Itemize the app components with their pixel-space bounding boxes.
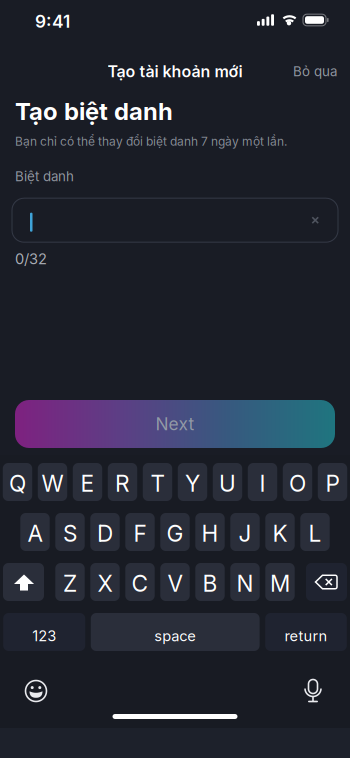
- button[interactable]: X: [90, 563, 120, 601]
- staticText: J: [238, 520, 251, 547]
- button[interactable]: K: [265, 513, 295, 551]
- staticText: 9:41: [35, 11, 70, 32]
- button[interactable]: T: [143, 463, 172, 501]
- staticText: R: [115, 470, 130, 497]
- staticText: I: [259, 470, 265, 497]
- button[interactable]: G: [160, 513, 190, 551]
- button[interactable]: N: [230, 563, 260, 601]
- staticText: B: [202, 570, 217, 597]
- button[interactable]: C: [125, 563, 155, 601]
- button[interactable]: P: [318, 463, 347, 501]
- staticText: W: [41, 470, 63, 497]
- staticText: Next: [155, 414, 194, 434]
- button[interactable]: S: [55, 513, 85, 551]
- staticText: F: [133, 520, 146, 547]
- staticText: Z: [63, 570, 77, 597]
- staticText: C: [131, 570, 148, 597]
- button[interactable]: 123: [3, 613, 85, 651]
- button[interactable]: return: [265, 613, 347, 651]
- staticText: Q: [9, 470, 26, 497]
- button[interactable]: O: [283, 463, 312, 501]
- button[interactable]: Next: [15, 400, 335, 448]
- button[interactable]: I: [248, 463, 277, 501]
- staticText: S: [63, 520, 77, 547]
- staticText: return: [284, 627, 327, 645]
- button[interactable]: F: [125, 513, 155, 551]
- button[interactable]: D: [90, 513, 120, 551]
- staticText: N: [236, 570, 253, 597]
- staticText: space: [154, 627, 196, 645]
- staticText: Tạo biệt danh: [15, 97, 173, 125]
- staticText: Bỏ qua: [293, 64, 337, 79]
- staticText: H: [201, 520, 218, 547]
- staticText: E: [80, 470, 94, 497]
- staticText: L: [308, 520, 321, 547]
- button[interactable]: Y: [178, 463, 207, 501]
- button[interactable]: Q: [3, 463, 32, 501]
- staticText: D: [97, 520, 113, 547]
- button[interactable]: Delete: [306, 563, 347, 601]
- staticText: U: [219, 470, 236, 497]
- staticText: G: [166, 520, 183, 547]
- button[interactable]: L: [300, 513, 330, 551]
- staticText: M: [270, 570, 290, 597]
- button[interactable]: H: [195, 513, 225, 551]
- staticText: 0/32: [15, 250, 47, 267]
- staticText: T: [150, 470, 164, 497]
- staticText: X: [97, 570, 112, 597]
- staticText: Biệt danh: [15, 168, 74, 184]
- button[interactable]: U: [213, 463, 242, 501]
- button[interactable]: W: [38, 463, 67, 501]
- button[interactable]: Emoji: [24, 679, 48, 703]
- staticText: V: [167, 570, 182, 597]
- button[interactable]: A: [20, 513, 50, 551]
- button[interactable]: Z: [55, 563, 85, 601]
- button[interactable]: Clear text: [311, 216, 319, 224]
- button[interactable]: M: [265, 563, 295, 601]
- button[interactable]: Dictation: [301, 679, 325, 703]
- staticText: Bạn chỉ có thể thay đổi biệt danh 7 ngày…: [15, 134, 287, 148]
- staticText: 123: [32, 627, 56, 645]
- button[interactable]: Shift: [3, 563, 44, 601]
- button[interactable]: space: [91, 613, 260, 651]
- button[interactable]: R: [108, 463, 137, 501]
- staticText: Y: [185, 470, 200, 497]
- staticText: O: [289, 470, 306, 497]
- staticText: P: [325, 470, 339, 497]
- button[interactable]: E: [73, 463, 102, 501]
- button[interactable]: V: [160, 563, 190, 601]
- staticText: A: [27, 520, 42, 547]
- staticText: K: [272, 520, 287, 547]
- button[interactable]: Biệt danh: [12, 198, 338, 242]
- button[interactable]: Bỏ qua: [293, 64, 337, 79]
- button[interactable]: B: [195, 563, 225, 601]
- staticText: Tạo tài khoản mới: [107, 62, 242, 81]
- button[interactable]: J: [230, 513, 260, 551]
